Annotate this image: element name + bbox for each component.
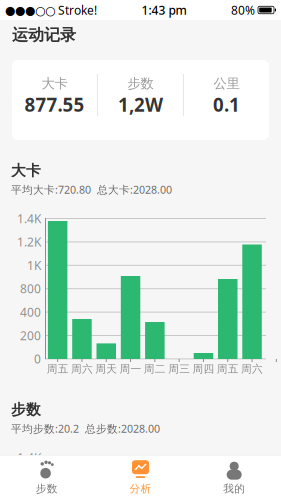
- staticText: 周五: [217, 362, 239, 375]
- staticText: 步数: [127, 75, 153, 92]
- staticText: 877.55: [24, 92, 84, 117]
- staticText: 周二: [144, 362, 166, 375]
- staticText: 1,2W: [118, 92, 163, 117]
- staticText: 0.1: [213, 92, 240, 117]
- staticText: 800: [20, 281, 41, 297]
- staticText: 大卡: [11, 161, 41, 179]
- staticText: 平均大卡:720.80 总大卡:2028.00: [11, 182, 172, 197]
- staticText: 运动记录: [12, 25, 76, 45]
- staticText: 平均步数:20.2 总步数:2028.00: [11, 421, 160, 436]
- staticText: 周四: [192, 362, 214, 375]
- button[interactable]: 分析: [94, 455, 187, 500]
- staticText: 1.4K: [17, 449, 41, 465]
- staticText: 步数: [11, 400, 41, 418]
- staticText: 200: [20, 327, 41, 343]
- staticText: 我的: [223, 482, 245, 495]
- staticText: 周六: [241, 362, 263, 375]
- staticText: 1:43 pm: [141, 2, 186, 18]
- staticText: 1K: [27, 257, 41, 273]
- staticText: 周六: [71, 362, 93, 375]
- staticText: ●●●○○ Stroke!: [5, 2, 97, 18]
- staticText: 分析: [129, 482, 151, 495]
- staticText: 周五: [47, 362, 69, 375]
- staticText: 大卡: [41, 75, 67, 92]
- staticText: 1.2K: [17, 473, 41, 489]
- button[interactable]: 我的: [187, 455, 281, 500]
- staticText: 1.4K: [17, 210, 41, 226]
- staticText: 80%: [231, 2, 255, 18]
- staticText: 步数: [36, 482, 58, 495]
- staticText: 周天: [95, 362, 117, 375]
- staticText: 公里: [213, 75, 239, 92]
- staticText: 周三: [168, 362, 190, 375]
- staticText: 1.2K: [17, 234, 41, 250]
- staticText: 周一: [120, 362, 142, 375]
- staticText: 400: [20, 304, 41, 320]
- button[interactable]: 步数: [0, 455, 94, 500]
- staticText: 0: [34, 351, 41, 367]
